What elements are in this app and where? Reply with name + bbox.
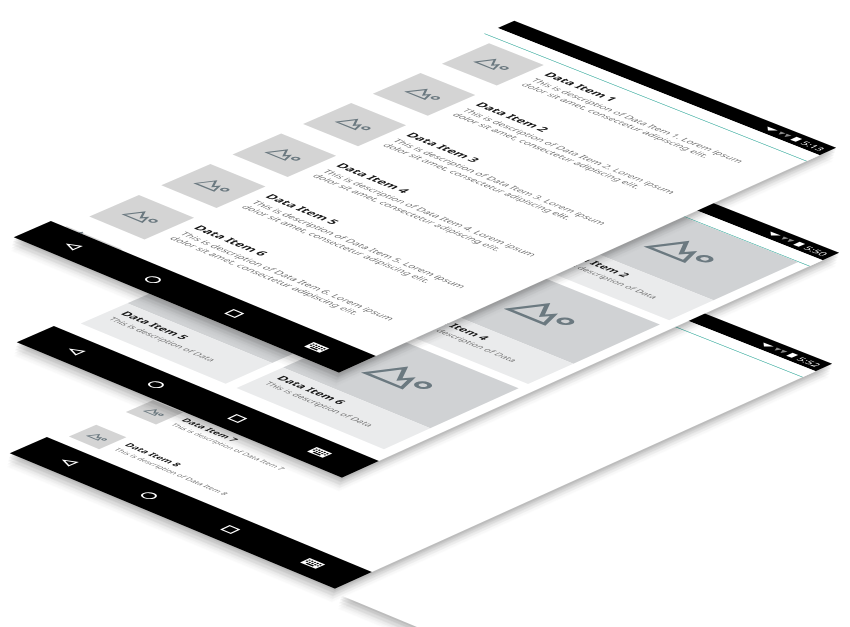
button[interactable]: Data Item 5 [81,265,361,384]
staticText: Data Item 6 [190,223,273,258]
button[interactable]: Keyboard [256,322,376,373]
button[interactable]: Data Item 8 [47,417,417,572]
button[interactable]: Recents [171,504,290,554]
staticText: Data Item 6 [273,374,351,406]
button[interactable]: Data Item 1 [368,143,641,257]
staticText: 5:13 [797,139,829,152]
button[interactable]: Data Item 2 [346,63,738,223]
button[interactable]: Recents [175,288,294,338]
staticText: Data Item 2 [472,100,554,134]
staticText: Data Item 7 [178,417,242,443]
staticText: This is description of Data [392,192,505,237]
button[interactable]: Data Item 7 [51,216,387,356]
button[interactable]: Data Item 4 [206,124,600,286]
button[interactable]: Data Item 6 [236,328,519,449]
button[interactable]: Data Item 4 [261,320,640,475]
staticText: This is description of Data Item 5 [281,373,401,422]
staticText: Data Item 5 [261,192,344,226]
button[interactable]: Keyboard [252,538,372,589]
staticText: This is description of Data [406,316,521,364]
staticText: This is description of Data Item 3 [392,325,511,373]
staticText: Data Item 3 [402,130,485,164]
staticText: Data Item 5 [118,309,194,341]
staticText: Data Item 1 [403,186,479,216]
staticText: Data Item 3 [262,247,338,278]
button[interactable]: Home [94,254,212,304]
staticText: This is description of Data Item 3. Lore… [380,137,632,240]
staticText: Data Item 3 [401,320,464,346]
staticText: This is description of Data Item 1 [500,278,619,325]
button[interactable]: Data Item 5 [134,154,530,318]
staticText: This is description of Data [106,316,220,363]
button[interactable]: Data Item 6 [62,185,459,351]
staticText: Data Item 6 [235,392,298,418]
staticText: Data Item 4 [332,161,415,195]
staticText: Data Item 2 [455,296,519,322]
staticText: Data Item 8 [122,441,186,468]
button[interactable]: Data Item 1 [416,34,806,192]
staticText: Data Item 4 [417,310,494,342]
button[interactable]: Data Item 1 [426,250,802,401]
staticText: This is description of Data Item 5. Lore… [238,199,492,304]
button[interactable]: Data Item 2 [523,204,798,320]
button[interactable]: Data Item 2 [372,273,749,426]
staticText: This is description of Data Item 1. Lore… [518,77,770,178]
staticText: Data Item 2 [558,248,635,279]
button[interactable]: Home [97,359,215,409]
staticText: This is description of Data [547,254,662,300]
button[interactable]: Data Item 6 [149,368,530,526]
staticText: This is description of Data Item 2 [446,301,565,349]
button[interactable]: Recents [178,393,297,443]
staticText: 5:52 [793,355,825,368]
staticText: This is description of Data Item 4. Lore… [309,168,563,272]
staticText: This is description of Data Item 8 [112,446,232,496]
staticText: This is description of Data Item 2. Lore… [449,107,701,209]
button[interactable]: Data Item 5 [206,344,585,501]
button[interactable]: Data Item 4 [381,266,660,384]
button[interactable]: Data Item 3 [276,93,669,255]
staticText: Data Item 5 [291,368,354,394]
staticText: Data Item 1 [510,273,572,298]
staticText: This is description of Data [250,253,364,300]
staticText: This is description of Data Item 7 [169,422,289,471]
staticText: This is description of Data Item 6 [225,397,345,446]
staticText: Data Item 1 [540,70,622,103]
staticText: This is description of Data [261,380,377,428]
staticText: This is description of Data Item 6. Lore… [167,230,421,336]
button[interactable]: Data Item 3 [226,203,503,320]
button[interactable]: Data Item 3 [317,297,695,451]
staticText: 5:50 [800,244,832,257]
button[interactable]: Home [90,470,208,520]
button[interactable]: Back [17,326,134,376]
button[interactable]: Back [14,221,131,271]
staticText: This is description of Data Item 4 [337,349,456,397]
button[interactable]: Keyboard [259,427,379,478]
staticText: Data Item 4 [346,344,409,370]
button[interactable]: Data Item 7 [93,393,474,551]
button[interactable]: Back [10,437,127,487]
